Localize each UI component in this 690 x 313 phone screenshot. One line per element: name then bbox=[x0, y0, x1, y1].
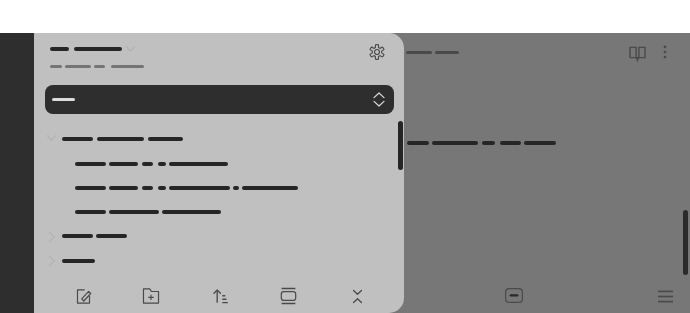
button[interactable] bbox=[38, 200, 378, 221]
button[interactable]: View options bbox=[273, 281, 303, 311]
button[interactable] bbox=[38, 127, 238, 147]
button[interactable] bbox=[44, 38, 174, 62]
button[interactable]: Collapse all bbox=[342, 281, 372, 311]
button[interactable] bbox=[45, 85, 394, 114]
button[interactable]: More options bbox=[650, 37, 680, 67]
button[interactable] bbox=[38, 152, 378, 173]
button[interactable]: Reading mode bbox=[622, 37, 652, 67]
button[interactable] bbox=[38, 249, 238, 270]
button[interactable]: New folder bbox=[136, 281, 166, 311]
button[interactable]: Compose bbox=[68, 281, 98, 311]
button[interactable] bbox=[38, 176, 378, 197]
button[interactable]: Menu bbox=[650, 281, 680, 311]
button[interactable]: Sort bbox=[205, 281, 235, 311]
button[interactable] bbox=[38, 227, 238, 247]
button[interactable]: Page button bbox=[496, 281, 532, 309]
button[interactable]: Settings bbox=[362, 37, 392, 67]
